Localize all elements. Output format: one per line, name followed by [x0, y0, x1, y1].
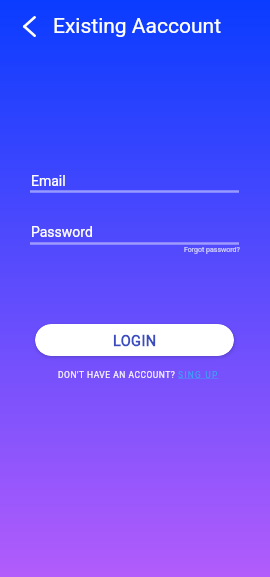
staticText: LOGIN	[113, 333, 157, 350]
staticText: SING UP	[178, 370, 219, 380]
button[interactable]: LOGIN	[35, 324, 234, 356]
staticText: DON'T HAVE AN ACCOUNT?	[58, 370, 178, 380]
button[interactable]: Forgot password?	[184, 246, 240, 254]
staticText: Existing Aaccount	[53, 14, 221, 39]
staticText: Password	[31, 224, 93, 240]
staticText: Forgot password?	[184, 246, 240, 254]
staticText: Email	[31, 173, 66, 189]
button[interactable]: SING UP	[178, 370, 219, 380]
button[interactable]: Back	[15, 12, 43, 40]
